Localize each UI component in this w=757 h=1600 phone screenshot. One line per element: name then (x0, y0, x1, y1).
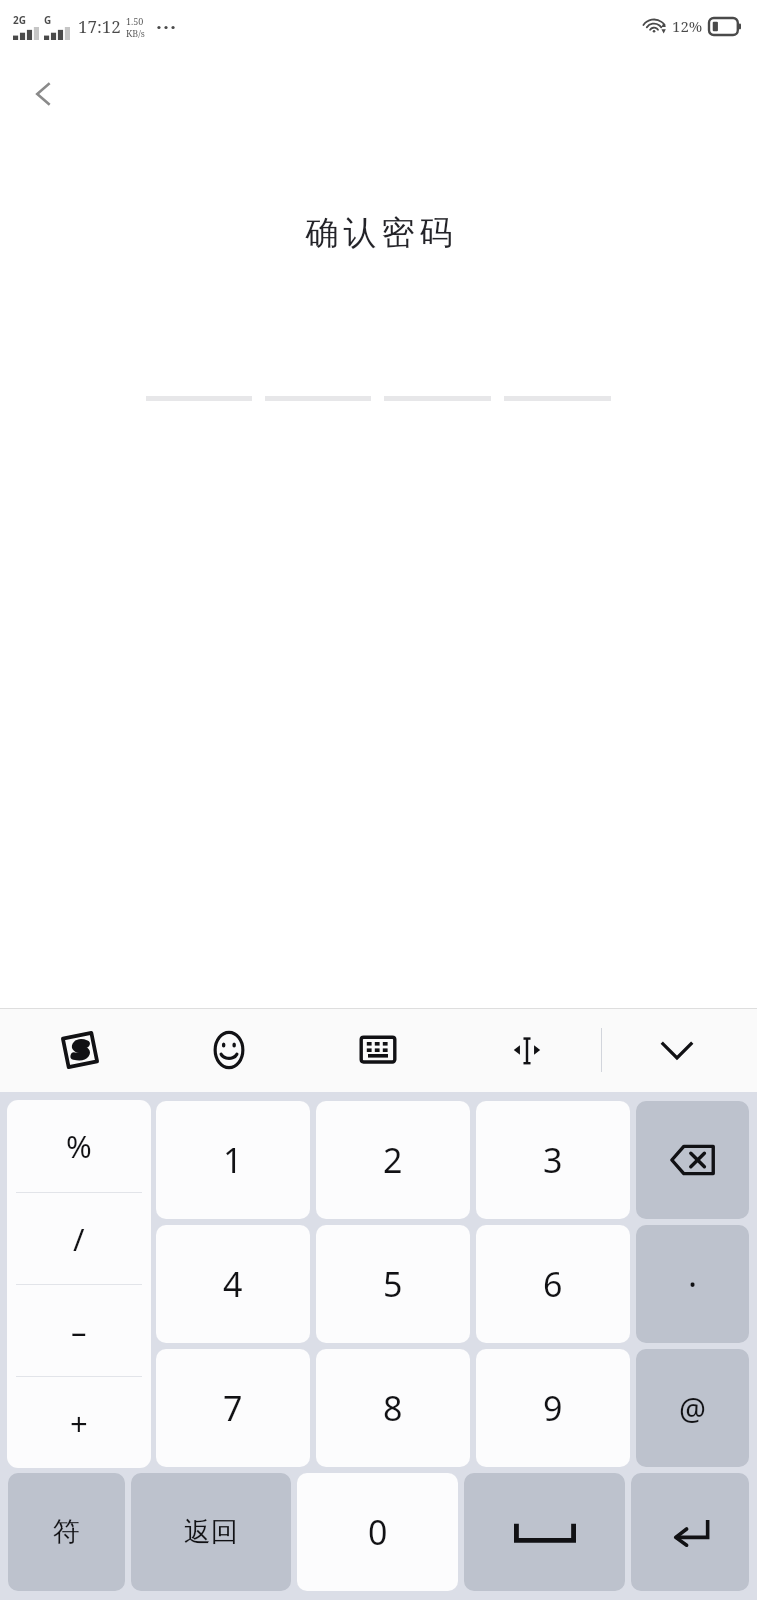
staticText: % (66, 1125, 92, 1167)
button[interactable]: Hide keyboard (602, 1008, 751, 1092)
staticText: 2G (13, 13, 26, 27)
button[interactable]: · (636, 1225, 749, 1343)
staticText: 5 (383, 1261, 403, 1307)
button[interactable]: / (7, 1193, 151, 1284)
staticText: 7 (223, 1385, 243, 1431)
staticText: 0 (368, 1509, 388, 1555)
staticText: 1.50 (126, 15, 144, 27)
button[interactable]: – (7, 1285, 151, 1376)
staticText: 9 (543, 1385, 563, 1431)
button[interactable]: 8 (316, 1349, 470, 1467)
staticText: 确认密码 (303, 212, 455, 254)
button[interactable]: Switch keyboard (303, 1008, 452, 1092)
button[interactable]: 7 (156, 1349, 310, 1467)
staticText: 符 (53, 1515, 80, 1549)
staticText: 4 (223, 1261, 243, 1307)
button[interactable]: 5 (316, 1225, 470, 1343)
staticText: 8 (383, 1385, 403, 1431)
staticText: + (70, 1402, 88, 1444)
button[interactable]: 4 (156, 1225, 310, 1343)
staticText: @ (679, 1388, 706, 1429)
button[interactable]: 3 (476, 1101, 630, 1219)
staticText: 3 (543, 1137, 563, 1183)
staticText: – (71, 1310, 87, 1352)
button[interactable]: @ (636, 1349, 749, 1467)
button[interactable]: 符 (8, 1473, 125, 1591)
button[interactable]: Space (464, 1473, 625, 1591)
button[interactable]: Backspace (636, 1101, 749, 1219)
button[interactable]: Emoji (154, 1008, 303, 1092)
staticText: 12% (672, 16, 703, 36)
staticText: 1 (223, 1137, 243, 1183)
button[interactable]: 0 (297, 1473, 458, 1591)
staticText: G (44, 13, 52, 27)
staticText: / (73, 1218, 85, 1260)
staticText: 返回 (184, 1515, 238, 1549)
staticText: 2 (383, 1137, 403, 1183)
button[interactable]: 9 (476, 1349, 630, 1467)
button[interactable]: 返回 (131, 1473, 291, 1591)
button[interactable]: % (7, 1100, 151, 1192)
staticText: KB/s (126, 27, 145, 39)
staticText: · (688, 1261, 698, 1307)
staticText: 17:12 (78, 15, 121, 38)
button[interactable]: 1 (156, 1101, 310, 1219)
button[interactable]: Back (14, 64, 74, 124)
button[interactable]: Sogou input method (6, 1008, 154, 1092)
button[interactable]: 6 (476, 1225, 630, 1343)
button[interactable]: Enter (631, 1473, 749, 1591)
button[interactable]: + (7, 1377, 151, 1468)
button[interactable]: 2 (316, 1101, 470, 1219)
button[interactable]: Move cursor (452, 1008, 601, 1092)
staticText: 6 (543, 1261, 563, 1307)
